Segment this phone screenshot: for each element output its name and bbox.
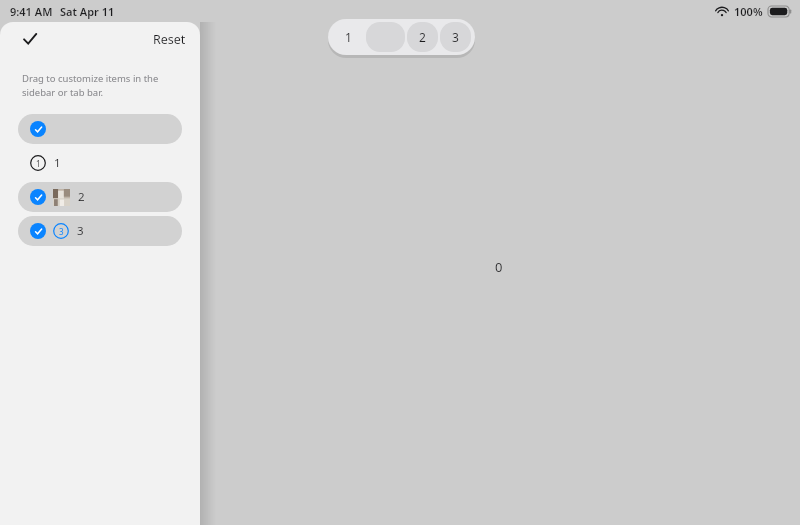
button[interactable]: Selected segment [366, 22, 405, 52]
staticText: 3 [452, 29, 459, 45]
staticText: 1 [345, 29, 352, 45]
button[interactable]: 3 [440, 22, 471, 52]
button[interactable]: 2 [18, 182, 182, 212]
button[interactable]: 2 [407, 22, 438, 52]
button[interactable]: 1 [332, 22, 364, 52]
staticText: 1 [36, 158, 41, 169]
staticText: 2 [78, 189, 85, 205]
staticText: Reset [153, 31, 186, 48]
button[interactable]: 1 [18, 148, 182, 178]
staticText: 1 [54, 155, 61, 171]
staticText: Sat Apr 11 [60, 4, 115, 19]
staticText: 100% [734, 4, 763, 19]
button[interactable]: Done [17, 26, 43, 52]
staticText: 0 [495, 258, 503, 276]
button[interactable]: Reset [149, 28, 190, 51]
staticText: 9:41 AM [10, 4, 53, 19]
button[interactable]: 3 [18, 216, 182, 246]
button[interactable] [18, 114, 182, 144]
staticText: 3 [59, 226, 64, 237]
staticText: 2 [419, 29, 426, 45]
staticText: 3 [77, 223, 84, 239]
staticText: Drag to customize items in the sidebar o… [22, 72, 182, 99]
